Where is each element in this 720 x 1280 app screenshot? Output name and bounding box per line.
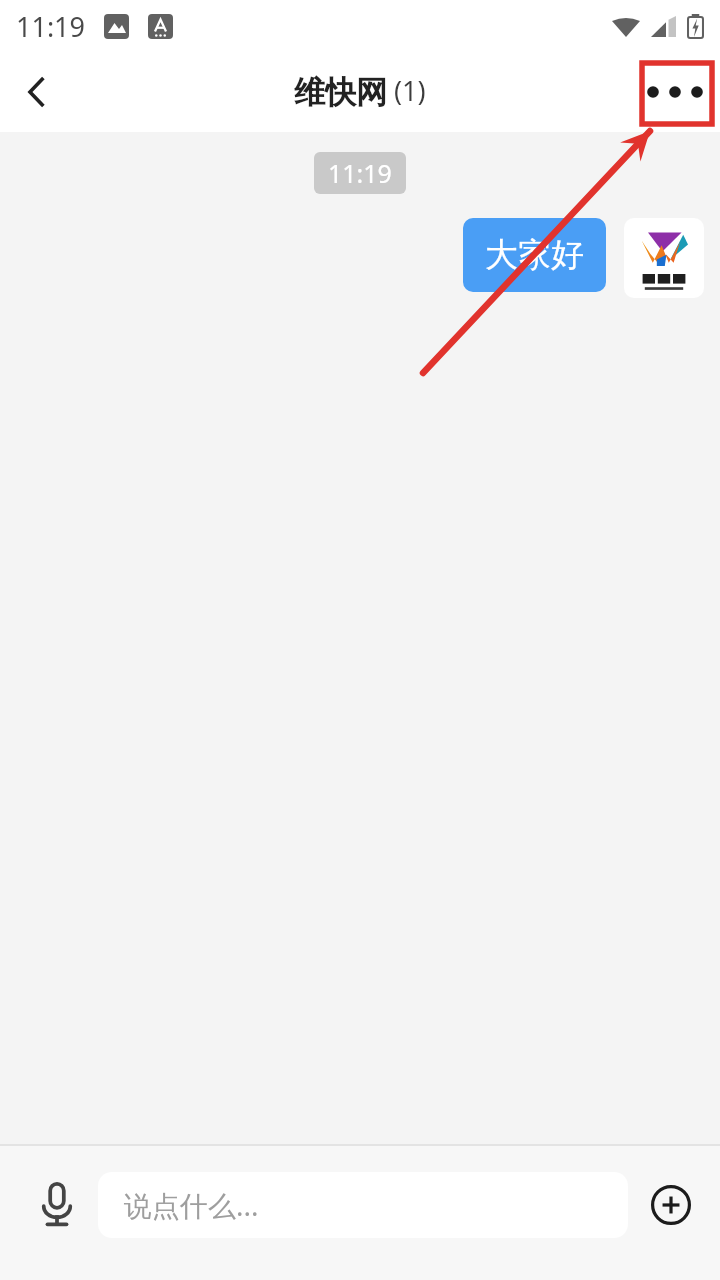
staticText: (1): [394, 72, 426, 109]
staticText: 11:19: [328, 156, 392, 190]
button[interactable]: 说点什么...: [98, 1172, 628, 1238]
staticText: 维快网: [294, 73, 387, 112]
button[interactable]: More options: [639, 56, 711, 128]
button[interactable]: Avatar: [624, 218, 704, 298]
staticText: 说点什么...: [124, 1186, 259, 1224]
staticText: 大家好: [485, 234, 584, 276]
button[interactable]: Voice input: [14, 1162, 100, 1248]
button[interactable]: Back: [0, 55, 74, 129]
button[interactable]: 大家好: [463, 218, 606, 292]
staticText: 11:19: [16, 8, 86, 45]
button[interactable]: More actions: [633, 1167, 709, 1243]
